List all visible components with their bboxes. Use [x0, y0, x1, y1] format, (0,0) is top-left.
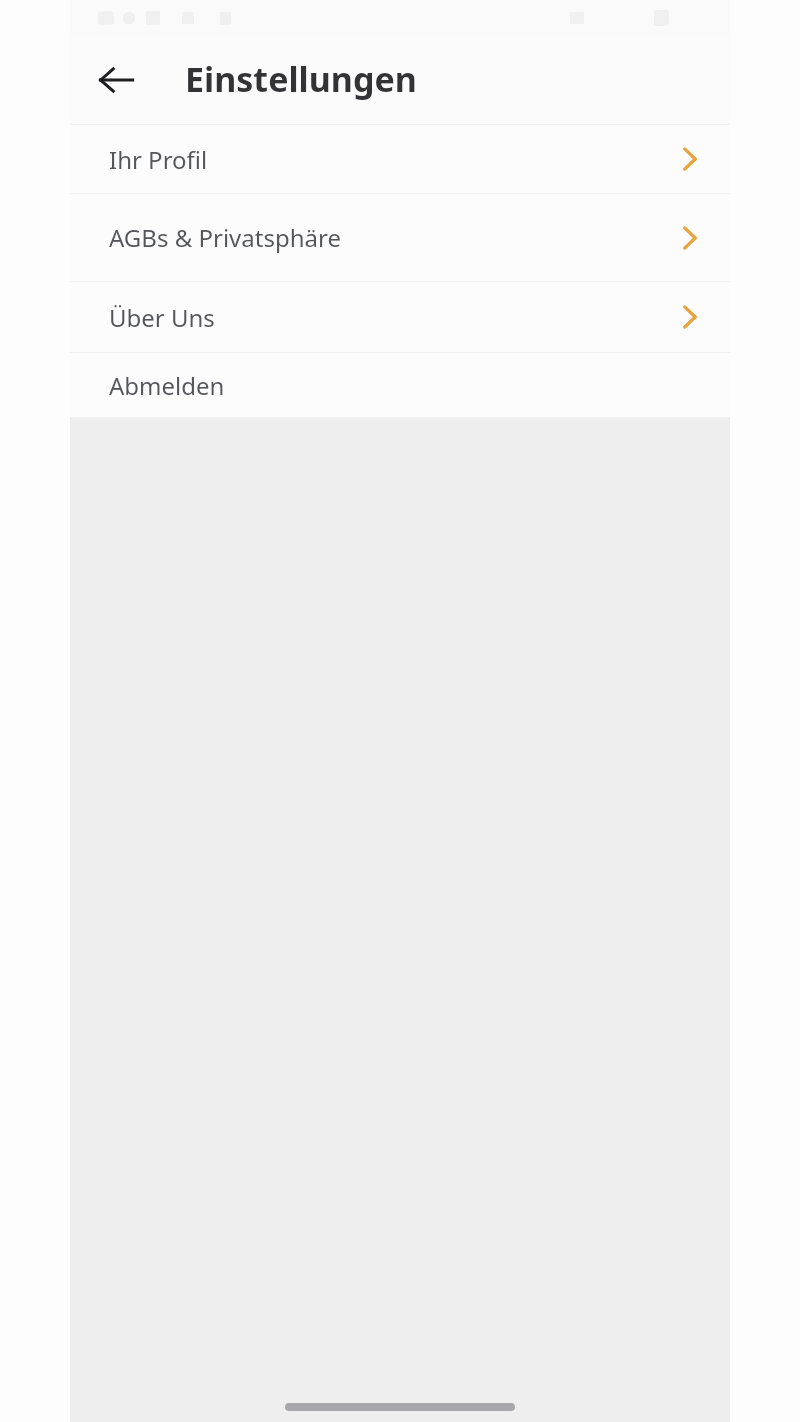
staticText: Ihr Profil [109, 143, 208, 176]
staticText: Über Uns [109, 301, 215, 334]
staticText: Einstellungen [185, 56, 417, 102]
button[interactable]: Back [88, 52, 144, 108]
button[interactable]: Über Uns [70, 282, 730, 352]
button[interactable]: AGBs & Privatsphäre [70, 194, 730, 281]
staticText: Abmelden [109, 369, 225, 402]
button[interactable]: Ihr Profil [70, 125, 730, 193]
staticText: AGBs & Privatsphäre [109, 221, 341, 254]
button[interactable]: Abmelden [70, 353, 730, 417]
